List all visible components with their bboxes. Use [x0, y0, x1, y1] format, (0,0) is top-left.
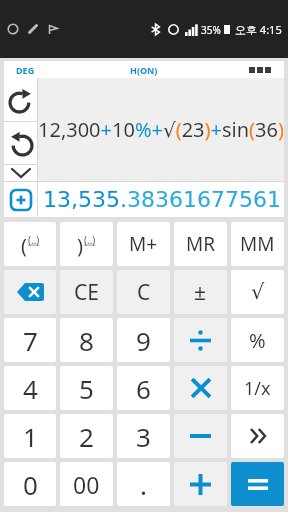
button[interactable]: CE: [60, 270, 113, 314]
staticText: 2: [79, 419, 94, 454]
button[interactable]: Backspace: [174, 366, 227, 410]
staticText: 7: [23, 323, 38, 358]
staticText: ±: [194, 278, 207, 307]
button[interactable]: Add to memory: [4, 182, 37, 217]
button[interactable]: (: [4, 222, 56, 266]
button[interactable]: 9: [117, 318, 170, 362]
button[interactable]: .: [117, 462, 170, 506]
button[interactable]: √: [231, 270, 284, 314]
staticText: M+: [129, 231, 158, 257]
staticText: 3: [136, 419, 151, 454]
staticText: H(ON): [130, 64, 158, 76]
staticText: 1: [23, 419, 38, 454]
staticText: 오후 4:15: [235, 22, 282, 37]
button[interactable]: Backspace: [231, 414, 284, 458]
button[interactable]: Redo: [4, 78, 37, 121]
staticText: .: [140, 467, 147, 502]
staticText: C: [137, 278, 151, 307]
button[interactable]: 4: [4, 366, 56, 410]
button[interactable]: 00: [60, 462, 113, 506]
button[interactable]: 5: [60, 366, 113, 410]
button[interactable]: 1/x: [231, 366, 284, 410]
button[interactable]: 1: [4, 414, 56, 458]
button[interactable]: ±: [174, 270, 227, 314]
staticText: 8: [79, 323, 94, 358]
staticText: 0: [23, 467, 38, 502]
button[interactable]: Backspace: [174, 414, 227, 458]
staticText: (..): [28, 233, 40, 247]
button[interactable]: 2: [60, 414, 113, 458]
button[interactable]: 0: [4, 462, 56, 506]
staticText: %: [249, 327, 266, 354]
button[interactable]: Backspace: [174, 318, 227, 362]
staticText: √: [251, 280, 265, 304]
staticText: (: [21, 232, 27, 259]
staticText: MR: [186, 231, 216, 257]
staticText: 5: [79, 371, 94, 406]
staticText: 35%: [201, 23, 221, 37]
button[interactable]: 7: [4, 318, 56, 362]
button[interactable]: C: [117, 270, 170, 314]
staticText: 1/x: [244, 376, 271, 401]
staticText: 9: [136, 323, 151, 358]
staticText: 4: [23, 371, 38, 406]
button[interactable]: Undo: [4, 122, 37, 164]
button[interactable]: 3: [117, 414, 170, 458]
staticText: 6: [136, 371, 151, 406]
button[interactable]: %: [231, 318, 284, 362]
staticText: CE: [74, 278, 99, 307]
button[interactable]: M+: [117, 222, 170, 266]
button[interactable]: Backspace: [4, 270, 56, 314]
staticText: ): [77, 232, 83, 259]
button[interactable]: MM: [231, 222, 284, 266]
button[interactable]: Expand: [4, 165, 37, 181]
button[interactable]: ): [60, 222, 113, 266]
staticText: (..): [84, 233, 96, 247]
button[interactable]: 6: [117, 366, 170, 410]
staticText: 13,535.38361677561: [43, 187, 281, 213]
staticText: 12,300+10%+√(23)+sin(36): [38, 116, 283, 143]
staticText: DEG: [16, 64, 35, 76]
button[interactable]: Backspace: [174, 462, 227, 506]
staticText: MM: [240, 231, 275, 257]
staticText: 00: [73, 469, 100, 500]
button[interactable]: Backspace: [231, 462, 284, 506]
button[interactable]: 8: [60, 318, 113, 362]
button[interactable]: MR: [174, 222, 227, 266]
